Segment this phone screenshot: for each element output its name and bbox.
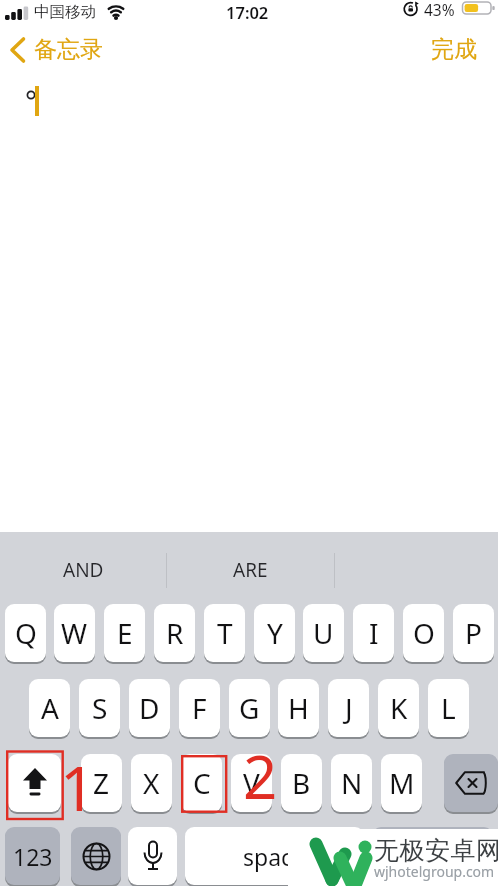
staticText: AND	[63, 557, 104, 583]
button[interactable]: X	[131, 754, 172, 812]
staticText: N	[341, 764, 363, 802]
button[interactable]: K	[378, 679, 419, 737]
staticText: 2	[243, 735, 278, 817]
staticText: F	[192, 689, 207, 727]
staticText: B	[292, 764, 311, 802]
staticText: K	[390, 689, 408, 727]
button[interactable]: A	[29, 679, 70, 737]
button[interactable]: space	[185, 827, 364, 885]
staticText: 备忘录	[34, 35, 103, 64]
button[interactable]	[71, 827, 121, 885]
button[interactable]	[8, 754, 61, 812]
button[interactable]: R	[154, 604, 195, 662]
button[interactable]	[9, 37, 27, 64]
staticText: T	[217, 614, 233, 652]
staticText: 43%	[424, 0, 455, 20]
staticText: space	[243, 841, 306, 872]
staticText: 完成	[431, 35, 477, 64]
button[interactable]: B	[281, 754, 322, 812]
staticText: Q	[15, 614, 37, 652]
staticText: E	[117, 614, 133, 652]
staticText: wjhotelgroup.com	[374, 862, 495, 881]
staticText: Z	[93, 764, 110, 802]
button[interactable]: W	[54, 604, 95, 662]
staticText: O	[413, 614, 435, 652]
button[interactable]	[128, 827, 177, 885]
button[interactable]: U	[303, 604, 344, 662]
staticText: 1	[60, 745, 96, 829]
staticText: Y	[267, 614, 283, 652]
button[interactable]: H	[278, 679, 319, 737]
button[interactable]: M	[381, 754, 422, 812]
button[interactable]: L	[428, 679, 469, 737]
button[interactable]: F	[179, 679, 220, 737]
button[interactable]: S	[79, 679, 120, 737]
staticText: 中国移动	[34, 2, 96, 22]
staticText: S	[92, 689, 108, 727]
button[interactable]: 123	[5, 827, 60, 885]
button[interactable]: Y	[254, 604, 295, 662]
button[interactable]: I	[353, 604, 394, 662]
staticText: H	[288, 689, 309, 727]
button[interactable]: J	[328, 679, 369, 737]
button[interactable]: N	[331, 754, 372, 812]
button[interactable]: 备忘录	[34, 35, 103, 64]
button[interactable]: O	[403, 604, 444, 662]
button[interactable]: T	[204, 604, 245, 662]
button[interactable]: Q	[5, 604, 46, 662]
staticText: 123	[13, 841, 53, 872]
staticText: W	[61, 614, 88, 652]
staticText: A	[41, 689, 59, 727]
button[interactable]: AND	[0, 550, 166, 590]
staticText: 无极安卓网	[374, 835, 498, 866]
button[interactable]: V	[231, 754, 272, 812]
staticText: V	[243, 764, 260, 802]
button[interactable]: E	[104, 604, 145, 662]
button[interactable]: P	[453, 604, 494, 662]
staticText: ARE	[233, 557, 268, 583]
button[interactable]	[444, 754, 498, 812]
staticText: J	[345, 689, 353, 727]
staticText: U	[313, 614, 334, 652]
staticText: G	[239, 689, 260, 727]
button[interactable]: C	[181, 754, 222, 812]
button[interactable]: 完成	[431, 35, 477, 64]
staticText: R	[166, 614, 184, 652]
button[interactable]: D	[129, 679, 170, 737]
staticText: M	[389, 764, 415, 802]
button[interactable]: G	[229, 679, 270, 737]
staticText: 17:02	[226, 1, 269, 23]
staticText: D	[139, 689, 160, 727]
staticText: C	[193, 764, 211, 802]
staticText: P	[465, 614, 482, 652]
staticText: I	[369, 614, 379, 652]
button[interactable]	[372, 827, 493, 885]
staticText: L	[441, 689, 456, 727]
button[interactable]: ARE	[166, 550, 334, 590]
button[interactable]: Z	[81, 754, 122, 812]
staticText: X	[143, 764, 160, 802]
